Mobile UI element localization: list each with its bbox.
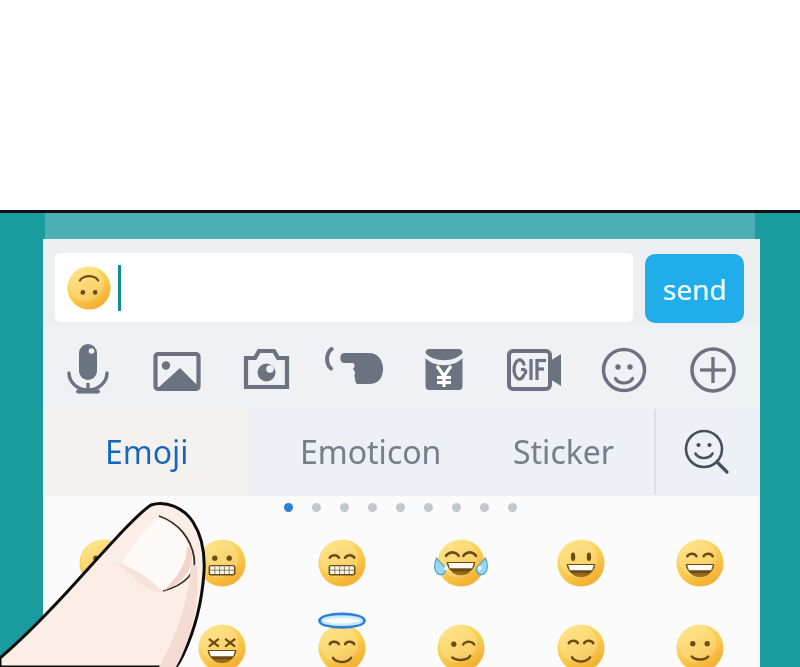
button[interactable]: Red packet xyxy=(416,339,472,395)
button[interactable]: send xyxy=(645,254,744,323)
button[interactable]: emoji 6 xyxy=(676,539,724,587)
button[interactable]: Sticker xyxy=(474,407,654,496)
button[interactable]: Camera xyxy=(238,339,294,395)
button[interactable] xyxy=(55,253,633,322)
button[interactable]: emoji 4 xyxy=(437,539,485,587)
button[interactable]: GIF xyxy=(505,339,561,395)
button[interactable]: emoji 11 xyxy=(557,624,605,667)
button[interactable]: Voice message xyxy=(60,339,116,395)
staticText: Sticker xyxy=(513,430,615,474)
button[interactable]: Voice input xyxy=(327,339,383,395)
button[interactable]: emoji 3 xyxy=(318,539,366,587)
button[interactable]: emoji 12 xyxy=(676,624,724,667)
button[interactable]: Photos xyxy=(149,339,205,395)
button[interactable]: Emoticon xyxy=(271,407,471,496)
button[interactable]: emoji 10 xyxy=(437,624,485,667)
button[interactable]: emoji 2 xyxy=(198,539,246,587)
button[interactable]: emoji 5 xyxy=(557,539,605,587)
button[interactable]: emoji 9 xyxy=(318,624,366,667)
staticText: send xyxy=(663,270,727,308)
button[interactable]: emoji 8 xyxy=(198,624,246,667)
button[interactable]: emoji 1 xyxy=(79,539,127,587)
button[interactable]: More xyxy=(685,339,741,395)
button[interactable]: Emoji xyxy=(43,407,250,496)
button[interactable]: emoji 7 xyxy=(79,624,127,667)
staticText: Emoji xyxy=(105,430,189,474)
staticText: Emoticon xyxy=(300,430,442,474)
button[interactable]: Search emoji xyxy=(656,407,760,496)
button[interactable]: Emoji xyxy=(596,339,652,395)
